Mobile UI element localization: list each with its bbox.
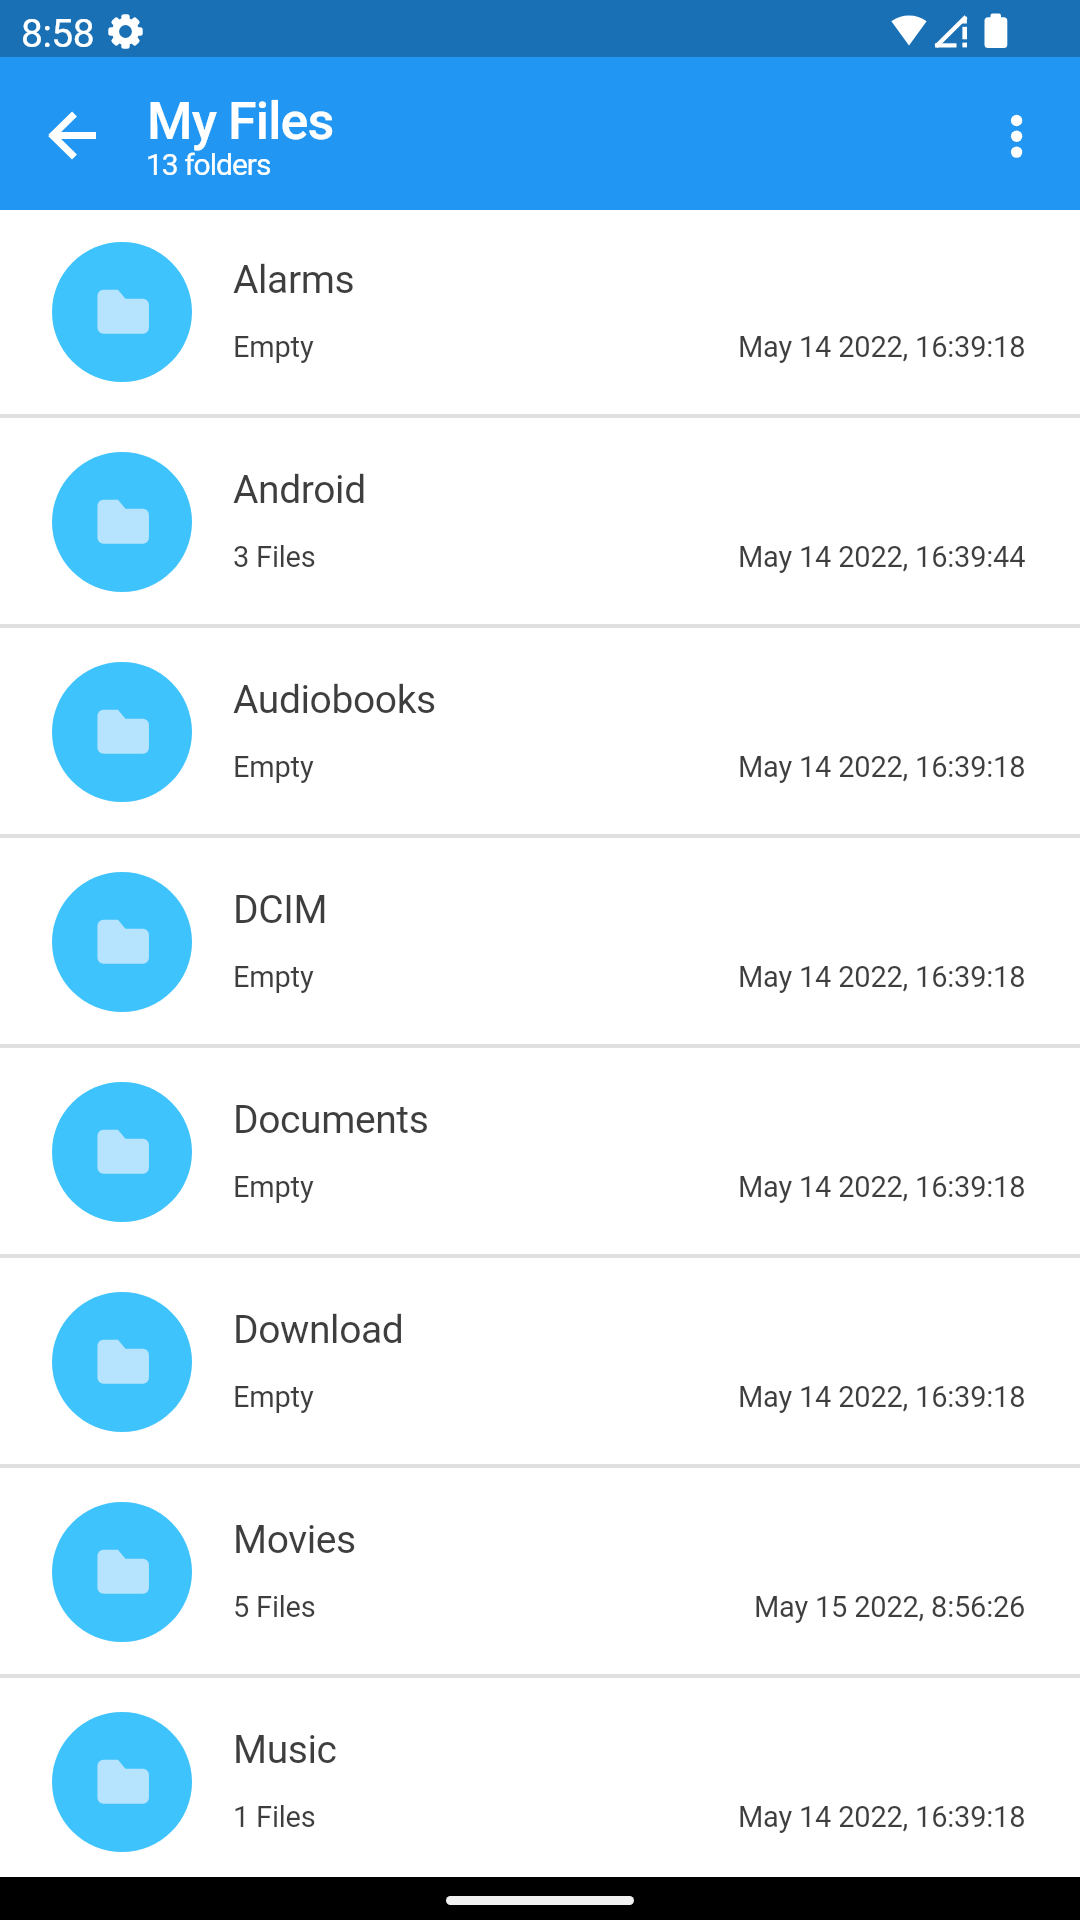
button[interactable]: Android <box>0 420 1080 630</box>
staticText: May 14 2022, 16:39:18 <box>738 330 1026 364</box>
staticText: Movies <box>233 1517 356 1563</box>
staticText: May 14 2022, 16:39:44 <box>738 540 1026 574</box>
staticText: Music <box>233 1727 337 1773</box>
staticText: Alarms <box>233 257 355 303</box>
staticText: 1 Files <box>233 1800 316 1834</box>
button[interactable]: DCIM <box>0 840 1080 1050</box>
staticText: May 14 2022, 16:39:18 <box>738 960 1026 994</box>
staticText: Empty <box>233 330 314 364</box>
staticText: May 14 2022, 16:39:18 <box>738 750 1026 784</box>
staticText: DCIM <box>233 887 328 933</box>
staticText: Audiobooks <box>233 677 436 723</box>
button[interactable]: Music <box>0 1680 1080 1890</box>
staticText: 13 folders <box>146 147 271 182</box>
staticText: Empty <box>233 1380 314 1414</box>
staticText: 8:58 <box>21 11 95 57</box>
staticText: Android <box>233 467 366 513</box>
button[interactable]: Documents <box>0 1050 1080 1260</box>
staticText: May 14 2022, 16:39:18 <box>738 1800 1026 1834</box>
button[interactable]: Movies <box>0 1470 1080 1680</box>
staticText: Empty <box>233 750 314 784</box>
staticText: Empty <box>233 960 314 994</box>
staticText: Documents <box>233 1097 429 1143</box>
staticText: Download <box>233 1307 404 1353</box>
staticText: May 15 2022, 8:56:26 <box>754 1590 1026 1624</box>
button[interactable]: Download <box>0 1260 1080 1470</box>
staticText: May 14 2022, 16:39:18 <box>738 1170 1026 1204</box>
button[interactable]: Alarms <box>0 210 1080 420</box>
staticText: 3 Files <box>233 540 316 574</box>
staticText: Empty <box>233 1170 314 1204</box>
button[interactable]: Audiobooks <box>0 630 1080 840</box>
button[interactable] <box>26 87 122 183</box>
staticText: My Files <box>147 91 334 152</box>
staticText: May 14 2022, 16:39:18 <box>738 1380 1026 1414</box>
button[interactable] <box>969 98 1065 194</box>
staticText: 5 Files <box>233 1590 316 1624</box>
